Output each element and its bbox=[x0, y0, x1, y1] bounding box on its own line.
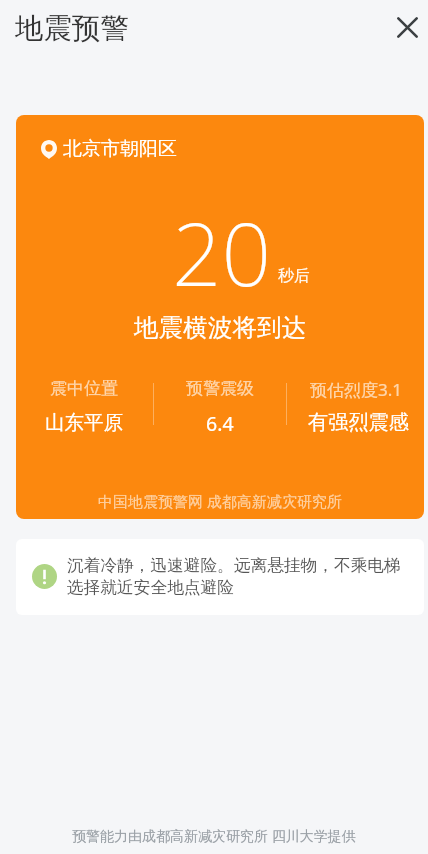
button[interactable]: 北京市朝阳区 bbox=[16, 115, 424, 519]
staticText: 地震预警 bbox=[15, 11, 129, 47]
staticText: 预警震级 bbox=[186, 378, 254, 399]
staticText: 6.4 bbox=[206, 410, 234, 437]
staticText: 秒后 bbox=[278, 266, 310, 286]
button[interactable]: Close bbox=[383, 3, 428, 51]
staticText: 有强烈震感 bbox=[308, 410, 409, 435]
button[interactable]: 沉着冷静，迅速避险。远离悬挂物，不乘电梯 选择就近安全地点避险 bbox=[16, 539, 424, 615]
staticText: 预估烈度3.1 bbox=[310, 378, 403, 401]
staticText: 震中位置 bbox=[50, 378, 118, 399]
staticText: 20 bbox=[172, 193, 272, 311]
staticText: 北京市朝阳区 bbox=[63, 137, 177, 161]
staticText: 中国地震预警网 成都高新减灾研究所 bbox=[98, 491, 342, 511]
staticText: 地震横波将到达 bbox=[134, 312, 307, 343]
staticText: 山东平原 bbox=[45, 410, 123, 435]
staticText: 沉着冷静，迅速避险。远离悬挂物，不乘电梯 选择就近安全地点避险 bbox=[67, 555, 401, 598]
staticText: 预警能力由成都高新减灾研究所 四川大学提供 bbox=[72, 826, 356, 845]
